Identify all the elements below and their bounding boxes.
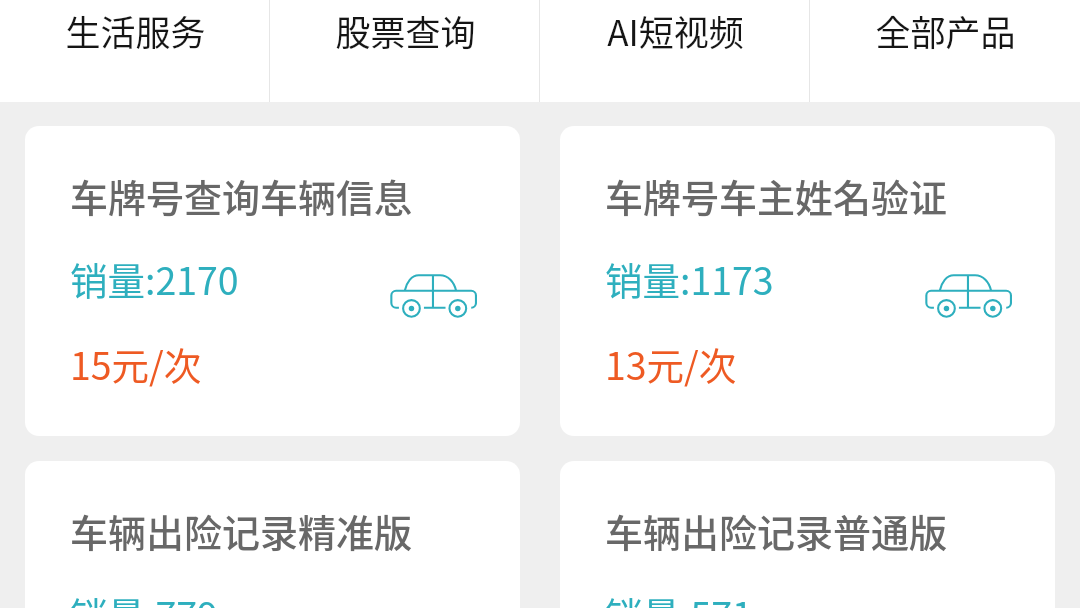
button[interactable]: AI短视频 — [540, 0, 810, 102]
staticText: 销量:2170 — [70, 251, 239, 305]
button[interactable]: 车辆出险记录普通版 — [560, 461, 1055, 608]
staticText: 销量:571 — [605, 586, 753, 608]
button[interactable]: 车牌号查询车辆信息 — [25, 126, 520, 436]
staticText: 15元/次 — [70, 336, 202, 390]
staticText: 车牌号查询车辆信息 — [70, 168, 413, 223]
staticText: 13元/次 — [605, 336, 737, 390]
button[interactable]: 车牌号车主姓名验证 — [560, 126, 1055, 436]
staticText: 车辆出险记录普通版 — [605, 503, 948, 558]
staticText: 全部产品 — [875, 5, 1016, 56]
staticText: 车牌号车主姓名验证 — [605, 168, 948, 223]
button[interactable]: 生活服务 — [0, 0, 270, 102]
staticText: AI短视频 — [607, 5, 744, 56]
button[interactable]: 全部产品 — [810, 0, 1080, 102]
staticText: 销量:1173 — [605, 251, 774, 305]
other: Vehicle service — [926, 274, 1012, 318]
button[interactable]: 股票查询 — [270, 0, 540, 102]
other: Vehicle service — [391, 274, 477, 318]
button[interactable]: 车辆出险记录精准版 — [25, 461, 520, 608]
staticText: 生活服务 — [65, 5, 206, 56]
staticText: 车辆出险记录精准版 — [70, 503, 413, 558]
staticText: 股票查询 — [335, 5, 476, 56]
staticText: 销量:779 — [70, 586, 218, 608]
